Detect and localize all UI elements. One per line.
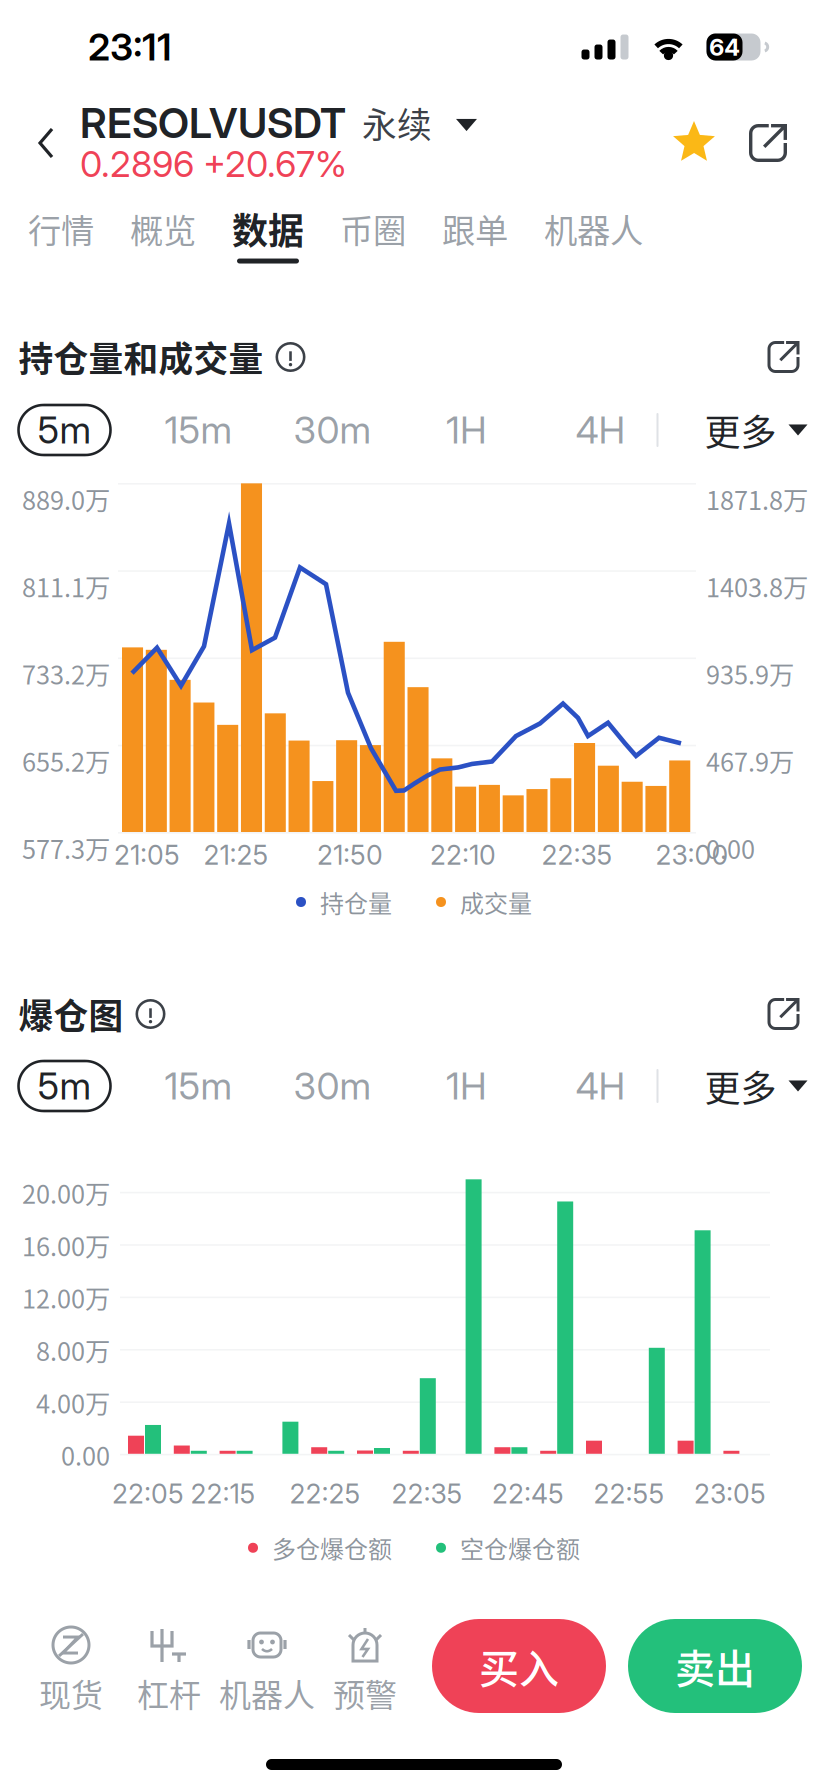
staticText: 15m (164, 407, 232, 453)
button[interactable]: 概览 (112, 194, 214, 276)
staticText: 概览 (130, 204, 196, 253)
button[interactable]: 5m (16, 1058, 112, 1114)
button[interactable]: Back (26, 112, 66, 174)
button[interactable]: 跟单 (424, 194, 526, 276)
staticText: 成交量 (460, 885, 532, 919)
button[interactable]: 行情 (10, 194, 112, 276)
button[interactable]: 预警 (316, 1616, 414, 1716)
staticText: 0.2896 +20.67% (80, 142, 347, 186)
staticText: 1403.8万 (706, 568, 808, 605)
button[interactable]: 更多 (704, 402, 807, 458)
staticText: 811.1万 (22, 568, 110, 605)
staticText: 655.2万 (22, 742, 110, 779)
staticText: 21:25 (203, 839, 268, 871)
staticText: 23:05 (694, 1478, 766, 1510)
button[interactable]: 更多 (704, 1058, 807, 1114)
staticText: 多仓爆仓额 (272, 1530, 392, 1565)
staticText: 22:35 (541, 839, 612, 871)
staticText: 12.00万 (22, 1279, 110, 1316)
staticText: 更多 (704, 1060, 776, 1112)
staticText: 4.00万 (36, 1384, 110, 1421)
staticText: 30m (293, 1063, 371, 1109)
staticText: 5m (37, 407, 91, 453)
staticText: 935.9万 (706, 655, 794, 692)
staticText: 30m (293, 407, 371, 453)
staticText: 现货 (39, 1670, 103, 1716)
staticText: 5m (37, 1063, 91, 1109)
button[interactable]: 5m (16, 402, 112, 458)
staticText: RESOLVUSDT (80, 98, 346, 148)
staticText: 22:05 (112, 1478, 184, 1510)
staticText: 杠杆 (137, 1670, 201, 1716)
staticText: 空仓爆仓额 (460, 1530, 580, 1565)
staticText: 21:50 (317, 839, 383, 871)
button[interactable]: 15m (150, 402, 246, 458)
staticText: 733.2万 (22, 655, 110, 692)
staticText: 16.00万 (22, 1227, 110, 1263)
staticText: 15m (164, 1063, 232, 1109)
staticText: 0.00 (706, 830, 755, 866)
staticText: 机器人 (544, 204, 643, 253)
staticText: 22:35 (391, 1478, 462, 1510)
button[interactable]: 4H (552, 1058, 648, 1114)
button[interactable]: 机器人 (218, 1616, 316, 1716)
staticText: 22:15 (190, 1478, 255, 1510)
staticText: 23:11 (88, 24, 172, 70)
staticText: 22:25 (289, 1478, 360, 1510)
staticText: 1H (446, 1063, 487, 1109)
staticText: 行情 (28, 204, 94, 253)
button[interactable]: Expand 持仓量和成交量 (757, 331, 809, 383)
button[interactable]: Share (740, 111, 796, 175)
staticText: 22:45 (492, 1478, 564, 1510)
button[interactable]: Favorite (664, 111, 724, 175)
staticText: 64 (709, 32, 740, 61)
button[interactable]: 币圈 (322, 194, 424, 276)
staticText: 889.0万 (22, 481, 110, 517)
staticText: 永续 (362, 98, 432, 148)
button[interactable]: 现货 (22, 1616, 120, 1716)
button[interactable]: 30m (284, 402, 380, 458)
staticText: 卖出 (675, 1637, 755, 1695)
staticText: 币圈 (340, 204, 406, 253)
staticText: 持仓量和成交量 (18, 332, 263, 382)
button[interactable]: 买入 (432, 1619, 606, 1713)
staticText: 23:00 (655, 839, 728, 871)
staticText: 爆仓图 (18, 989, 123, 1039)
staticText: 20.00万 (22, 1174, 110, 1211)
staticText: 0.00 (61, 1436, 110, 1473)
button[interactable]: 杠杆 (120, 1616, 218, 1716)
button[interactable]: 1H (418, 402, 514, 458)
staticText: 4H (575, 407, 625, 453)
button[interactable]: 1H (418, 1058, 514, 1114)
staticText: 22:55 (593, 1478, 664, 1510)
button[interactable]: 机器人 (526, 194, 661, 276)
staticText: 持仓量 (320, 885, 392, 919)
staticText: 8.00万 (36, 1332, 110, 1368)
staticText: 更多 (704, 404, 776, 456)
staticText: 预警 (333, 1670, 397, 1716)
button[interactable]: 15m (150, 1058, 246, 1114)
staticText: 577.3万 (22, 830, 110, 866)
staticText: 4H (575, 1063, 625, 1109)
staticText: 1H (446, 407, 487, 453)
button[interactable]: 卖出 (628, 1619, 802, 1713)
staticText: 数据 (232, 202, 304, 254)
staticText: 467.9万 (706, 742, 794, 779)
button[interactable]: 数据 (214, 194, 322, 276)
staticText: 机器人 (219, 1670, 315, 1716)
staticText: 买入 (479, 1637, 559, 1695)
button[interactable]: 30m (284, 1058, 380, 1114)
staticText: 跟单 (442, 204, 508, 253)
button[interactable]: 4H (552, 402, 648, 458)
button[interactable]: Expand 爆仓图 (757, 988, 809, 1040)
staticText: 22:10 (430, 839, 496, 871)
staticText: 1871.8万 (706, 481, 808, 517)
staticText: 21:05 (114, 839, 180, 871)
